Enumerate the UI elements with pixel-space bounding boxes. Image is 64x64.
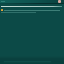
- button[interactable]: Profile: [58, 0, 61, 3]
- button[interactable]: [0, 6, 64, 8]
- button[interactable]: Menu: [0, 0, 64, 3]
- button[interactable]: [0, 9, 64, 11]
